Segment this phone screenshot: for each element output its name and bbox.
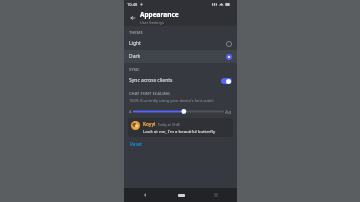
staticText: Today at 10:48 xyxy=(158,123,180,127)
button[interactable]: Recents xyxy=(211,190,221,200)
staticText: Appearance xyxy=(140,10,179,19)
staticText: THEME xyxy=(129,30,143,35)
staticText: Dark xyxy=(129,53,141,60)
staticText: A xyxy=(129,109,132,114)
button[interactable]: Dark xyxy=(124,50,237,63)
staticText: Sync across clients xyxy=(129,77,173,84)
staticText: SYNC xyxy=(129,67,140,72)
staticText: Koyyi xyxy=(143,121,156,127)
staticText: Reset xyxy=(130,141,142,147)
staticText: 10:48 xyxy=(127,2,138,7)
button[interactable]: Home xyxy=(176,190,186,200)
staticText: 100% (Currently using your device's font… xyxy=(129,98,214,103)
button[interactable]: Back xyxy=(140,190,150,200)
staticText: Look at me, I'm a beautiful butterfly xyxy=(143,128,216,134)
staticText: User Settings xyxy=(140,20,164,25)
button[interactable]: Light xyxy=(124,37,237,50)
staticText: CHAT FONT SCALING xyxy=(129,91,170,96)
button[interactable]: Back xyxy=(127,12,138,23)
button[interactable]: A xyxy=(129,107,232,116)
staticText: Light xyxy=(129,40,141,47)
button[interactable]: Sync across clients xyxy=(124,74,237,87)
staticText: Aa xyxy=(225,108,232,115)
button[interactable]: Reset xyxy=(129,140,143,148)
